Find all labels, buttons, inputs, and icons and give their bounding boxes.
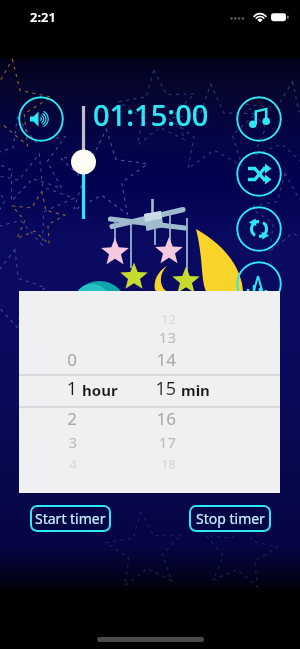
staticText: 1 [37, 376, 77, 401]
staticText: hour [82, 380, 118, 400]
button[interactable]: Music [236, 96, 282, 142]
staticText: 2:21 [30, 8, 56, 26]
staticText: 12 [136, 310, 176, 328]
staticText: 4 [37, 455, 77, 473]
staticText: 0 [37, 348, 77, 371]
staticText: 15 [136, 376, 176, 401]
staticText: 01:15:00 [93, 95, 209, 134]
button[interactable]: Start timer [30, 505, 111, 532]
staticText: min [181, 380, 210, 400]
button[interactable]: Volume [18, 96, 64, 142]
staticText: 17 [136, 432, 176, 452]
button[interactable]: Repeat [236, 206, 282, 252]
button[interactable] [71, 102, 96, 226]
staticText: 14 [136, 348, 176, 371]
staticText: 16 [136, 407, 176, 430]
button[interactable]: Stop timer [189, 505, 271, 532]
staticText: 13 [136, 327, 176, 347]
staticText: 3 [37, 432, 77, 452]
staticText: Start timer [35, 509, 106, 528]
staticText: 18 [136, 455, 176, 473]
staticText: Stop timer [196, 509, 265, 528]
button[interactable]: Equalizer [236, 261, 282, 307]
button[interactable]: Shuffle [236, 151, 282, 197]
staticText: 2 [37, 407, 77, 430]
